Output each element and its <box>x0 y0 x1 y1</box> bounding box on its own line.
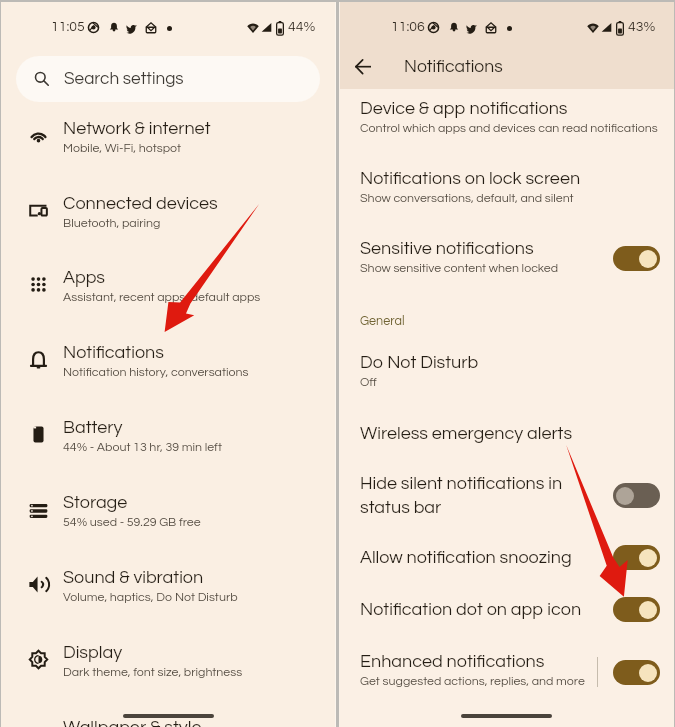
staticText: 54% used - 59.29 GB free <box>63 516 201 529</box>
button[interactable]: Search settings <box>16 56 320 102</box>
staticText: Control which apps and devices can read … <box>360 122 658 135</box>
staticText: 44% <box>288 20 316 34</box>
staticText: 11:05 <box>51 20 85 34</box>
staticText: Sound & vibration <box>63 568 204 587</box>
staticText: Off <box>360 376 377 389</box>
staticText: Enhanced notifications <box>360 652 600 671</box>
staticText: Connected devices <box>63 194 218 213</box>
staticText: 44% - About 13 hr, 39 min left <box>63 441 222 454</box>
staticText: Notification history, conversations <box>63 366 249 379</box>
staticText: Network & internet <box>63 119 211 138</box>
staticText: Notification dot on app icon <box>360 600 600 619</box>
button[interactable]: On <box>613 597 660 622</box>
button[interactable]: Connected devices <box>0 175 336 237</box>
button[interactable]: Enhanced notifications <box>340 637 675 707</box>
staticText: Dark theme, font size, brightness <box>63 666 243 679</box>
staticText: Notifications on lock screen <box>360 169 600 188</box>
staticText: Allow notification snoozing <box>360 548 600 567</box>
button[interactable]: Sound & vibration <box>0 549 336 611</box>
button[interactable]: Allow notification snoozing <box>340 533 675 581</box>
button[interactable]: Notifications <box>0 324 336 386</box>
staticText: Notifications <box>404 58 503 76</box>
staticText: Apps <box>63 268 106 287</box>
button[interactable]: Back <box>341 45 385 89</box>
button[interactable]: Sensitive notifications <box>340 224 675 294</box>
staticText: Get suggested actions, replies, and more <box>360 675 585 688</box>
button[interactable]: Storage <box>0 474 336 536</box>
button[interactable]: Battery <box>0 399 336 461</box>
button[interactable]: Display <box>0 624 336 686</box>
button[interactable]: Apps <box>0 249 336 311</box>
staticText: Display <box>63 643 123 662</box>
button[interactable]: Notification dot on app icon <box>340 585 675 633</box>
button[interactable]: Network & internet <box>0 100 336 162</box>
staticText: 11:06 <box>391 20 425 34</box>
button[interactable]: Do Not Disturb <box>340 338 675 408</box>
staticText: Storage <box>63 493 128 512</box>
staticText: Device & app notifications <box>360 99 600 118</box>
staticText: Hide silent notifications in status bar <box>360 474 600 517</box>
button[interactable]: Wireless emergency alerts <box>340 409 675 457</box>
staticText: Notifications <box>63 343 164 362</box>
staticText: Show sensitive content when locked <box>360 262 559 275</box>
button[interactable]: On <box>613 246 660 271</box>
button[interactable]: On <box>613 660 660 685</box>
staticText: Assistant, recent apps, default apps <box>63 291 261 304</box>
staticText: Volume, haptics, Do Not Disturb <box>63 591 238 604</box>
staticText: Mobile, Wi-Fi, hotspot <box>63 142 182 155</box>
staticText: Search settings <box>64 70 184 88</box>
staticText: Show conversations, default, and silent <box>360 192 574 205</box>
staticText: Bluetooth, pairing <box>63 217 161 230</box>
staticText: Do Not Disturb <box>360 353 600 372</box>
staticText: Wireless emergency alerts <box>360 424 600 443</box>
button[interactable]: Device & app notifications <box>340 84 675 154</box>
staticText: General <box>360 315 405 328</box>
staticText: 43% <box>628 20 656 34</box>
staticText: Sensitive notifications <box>360 239 600 258</box>
staticText: Battery <box>63 418 123 437</box>
button[interactable]: Hide silent notifications in status bar <box>340 459 675 531</box>
button[interactable]: Off <box>613 483 660 508</box>
button[interactable]: On <box>613 545 660 570</box>
button[interactable]: Notifications on lock screen <box>340 154 675 224</box>
staticText: Wallpaper & style <box>63 718 202 727</box>
